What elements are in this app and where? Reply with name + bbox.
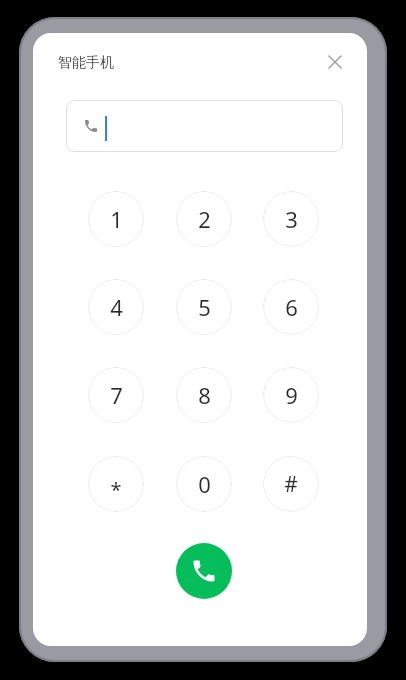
staticText: *	[110, 476, 122, 503]
staticText: 8	[198, 380, 211, 410]
button[interactable]: 5	[176, 279, 232, 335]
button[interactable]: 9	[263, 367, 319, 423]
button[interactable]: 2	[176, 191, 232, 247]
button[interactable]: *	[88, 456, 144, 512]
button[interactable]: Close	[321, 48, 349, 76]
staticText: 2	[198, 204, 211, 234]
staticText: 4	[110, 292, 123, 322]
button[interactable]	[66, 100, 343, 152]
staticText: 9	[285, 380, 298, 410]
button[interactable]: 3	[263, 191, 319, 247]
button[interactable]: 6	[263, 279, 319, 335]
staticText: 7	[110, 380, 123, 410]
staticText: 6	[285, 292, 298, 322]
button[interactable]: 1	[88, 191, 144, 247]
staticText: 3	[285, 204, 298, 234]
staticText: 智能手机	[58, 54, 114, 72]
button[interactable]: 8	[176, 367, 232, 423]
staticText: 5	[198, 292, 211, 322]
staticText: #	[284, 470, 298, 499]
button[interactable]: #	[263, 456, 319, 512]
button[interactable]: 0	[176, 456, 232, 512]
staticText: 0	[198, 469, 211, 499]
staticText: 1	[110, 204, 123, 234]
button[interactable]: 7	[88, 367, 144, 423]
button[interactable]: 4	[88, 279, 144, 335]
button[interactable]: Call	[176, 543, 232, 599]
